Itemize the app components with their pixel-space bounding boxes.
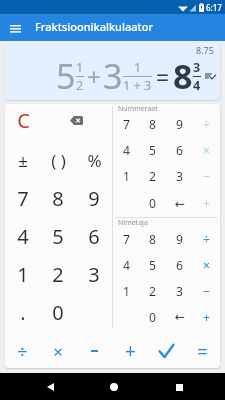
button[interactable]: 7 (113, 227, 139, 252)
button[interactable]: ÷ (193, 111, 220, 137)
staticText: Nummeraat (118, 104, 158, 111)
staticText: 5 (52, 223, 64, 250)
staticText: 9 (176, 231, 183, 248)
button[interactable]: 9 (166, 227, 193, 252)
staticText: + (87, 60, 101, 93)
button[interactable]: − (193, 163, 220, 190)
staticText: 2 (52, 261, 64, 288)
button[interactable]: Backspace (41, 104, 112, 139)
button[interactable]: 5 (40, 217, 76, 255)
staticText: × (203, 257, 210, 274)
button[interactable]: ± (5, 141, 40, 179)
button[interactable]: 0 (139, 304, 166, 330)
button[interactable]: ( ) (40, 141, 76, 179)
staticText: 4 (17, 223, 29, 250)
button[interactable]: + (193, 304, 220, 330)
staticText: 9 (176, 116, 183, 133)
button[interactable]: 2 (40, 255, 76, 293)
button[interactable]: 9 (166, 111, 193, 137)
staticText: 2 (76, 77, 84, 94)
staticText: 4 (123, 142, 130, 159)
button[interactable]: Back (40, 377, 60, 397)
staticText: 3 (88, 261, 100, 288)
staticText: 6:17 (206, 2, 222, 13)
staticText: 8 (173, 53, 193, 99)
staticText: 1 (123, 283, 130, 300)
staticText: ( ) (51, 149, 66, 172)
staticText: 0 (52, 299, 64, 326)
button[interactable]: + (193, 190, 220, 217)
staticText: 8.75 (196, 44, 214, 56)
button[interactable]: 3 (166, 278, 193, 304)
button[interactable]: 7 (113, 111, 139, 137)
button[interactable]: 0 (40, 293, 76, 331)
staticText: 6 (176, 142, 183, 159)
staticText: ÷ (203, 116, 210, 133)
staticText: ÷ (17, 339, 28, 364)
button[interactable]: × (193, 252, 220, 278)
button[interactable]: 7 (5, 179, 40, 217)
button[interactable]: − (193, 278, 220, 304)
button[interactable]: ÷ (193, 227, 220, 252)
button[interactable]: Recents (169, 377, 189, 397)
staticText: − (203, 168, 210, 185)
button[interactable]: Home (104, 377, 124, 397)
button[interactable]: 4 (113, 252, 139, 278)
button[interactable]: 6 (166, 137, 193, 163)
button[interactable]: 8 (40, 179, 76, 217)
button[interactable]: 3 (76, 255, 112, 293)
button[interactable]: × (193, 137, 220, 163)
button[interactable]: + (112, 334, 148, 368)
staticText: 1 (76, 59, 84, 76)
staticText: C (17, 107, 30, 134)
staticText: % (87, 149, 102, 172)
button[interactable]: 8 (139, 227, 166, 252)
button[interactable]: C (5, 104, 41, 139)
button[interactable]: × (40, 334, 76, 368)
button[interactable]: 2 (139, 278, 166, 304)
staticText: 0 (149, 195, 156, 212)
staticText: 7 (123, 116, 130, 133)
button[interactable]: . (5, 293, 40, 331)
button[interactable]: 9 (76, 179, 112, 217)
button[interactable]: 0 (139, 190, 166, 217)
button[interactable]: 4 (5, 217, 40, 255)
button[interactable]: 8 (139, 111, 166, 137)
staticText: 1 (134, 59, 142, 76)
staticText: 4 (123, 257, 130, 274)
button[interactable]: 2 (139, 163, 166, 190)
button[interactable]: Menu (6, 19, 24, 37)
staticText: ÷ (203, 231, 210, 248)
button[interactable]: 1 (113, 163, 139, 190)
staticText: 2 (149, 283, 156, 300)
staticText: 3 (176, 168, 183, 185)
staticText: + (125, 338, 136, 364)
button[interactable]: 5 (139, 252, 166, 278)
button[interactable]: ← (166, 190, 193, 217)
staticText: 6 (176, 257, 183, 274)
button[interactable]: 1 (113, 278, 139, 304)
button[interactable]: 3 (166, 163, 193, 190)
button[interactable]: ← (166, 304, 193, 330)
staticText: 3 (103, 53, 123, 99)
button[interactable]: 5 (139, 137, 166, 163)
button[interactable]: = (184, 334, 220, 368)
button[interactable]: Minus (76, 334, 112, 368)
staticText: 8 (149, 231, 156, 248)
staticText: − (203, 283, 210, 300)
button[interactable]: ÷ (5, 334, 40, 368)
button[interactable]: 1 (5, 255, 40, 293)
button[interactable]: 6 (166, 252, 193, 278)
staticText: 2 (149, 168, 156, 185)
staticText: 5 (149, 257, 156, 274)
button[interactable]: 6 (76, 217, 112, 255)
button[interactable]: 4 (113, 137, 139, 163)
staticText: ← (174, 197, 185, 211)
staticText: 1 (17, 261, 29, 288)
button[interactable]: Confirm (148, 334, 184, 368)
staticText: × (203, 142, 210, 159)
button[interactable]: % (76, 141, 112, 179)
